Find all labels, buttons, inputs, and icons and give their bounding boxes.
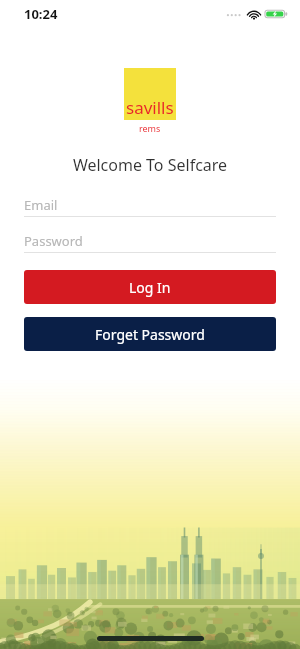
button[interactable]: Log In [24, 270, 276, 304]
staticText: Log In [129, 278, 171, 297]
staticText: Email [24, 196, 58, 214]
button[interactable]: Email [24, 194, 276, 217]
staticText: savills [126, 96, 174, 119]
staticText: rems [139, 122, 161, 134]
staticText: Welcome To Selfcare [0, 154, 300, 176]
staticText: Password [24, 232, 83, 250]
button[interactable]: Forget Password [24, 317, 276, 351]
button[interactable]: Password [24, 230, 276, 253]
staticText: Forget Password [95, 325, 205, 344]
staticText: 10:24 [24, 5, 58, 23]
